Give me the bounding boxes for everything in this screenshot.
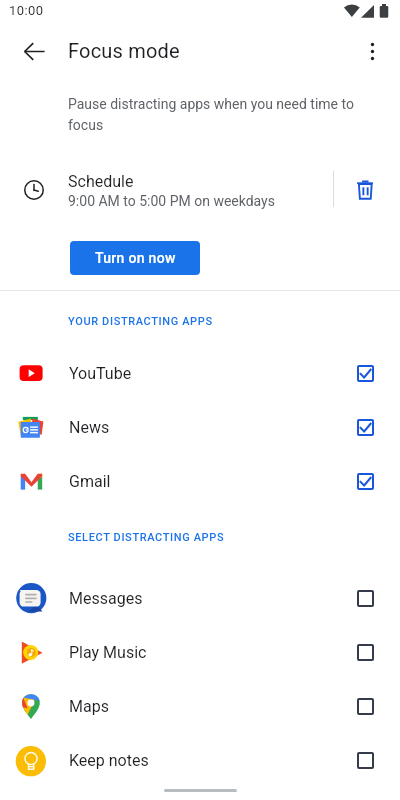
button[interactable]: Play Music [0,625,400,679]
staticText: 10:00 [9,3,44,18]
staticText: SELECT DISTRACTING APPS [68,531,225,544]
staticText: Gmail [69,472,330,491]
staticText: Focus mode [68,39,180,62]
button[interactable]: Turn on now [70,241,200,275]
button[interactable]: Gmail [0,454,400,508]
staticText: YOUR DISTRACTING APPS [68,315,213,328]
staticText: Play Music [69,643,330,662]
staticText: Turn on now [95,250,176,266]
button[interactable]: Schedule [0,156,333,218]
staticText: Pause distracting apps when you need tim… [68,96,364,133]
staticText: Maps [69,697,330,716]
staticText: News [69,418,330,437]
staticText: Messages [69,589,330,608]
button[interactable]: News [0,400,400,454]
button[interactable]: More options [348,27,396,75]
staticText: 9:00 AM to 5:00 PM on weekdays [68,193,275,209]
staticText: YouTube [69,364,330,383]
button[interactable]: Back [10,27,58,75]
button[interactable]: Maps [0,679,400,733]
button[interactable]: Keep notes [0,733,400,787]
button[interactable]: Messages [0,571,400,625]
staticText: Schedule [68,172,134,191]
button[interactable]: Delete schedule [334,156,400,218]
staticText: Keep notes [69,751,330,770]
button[interactable]: YouTube [0,346,400,400]
